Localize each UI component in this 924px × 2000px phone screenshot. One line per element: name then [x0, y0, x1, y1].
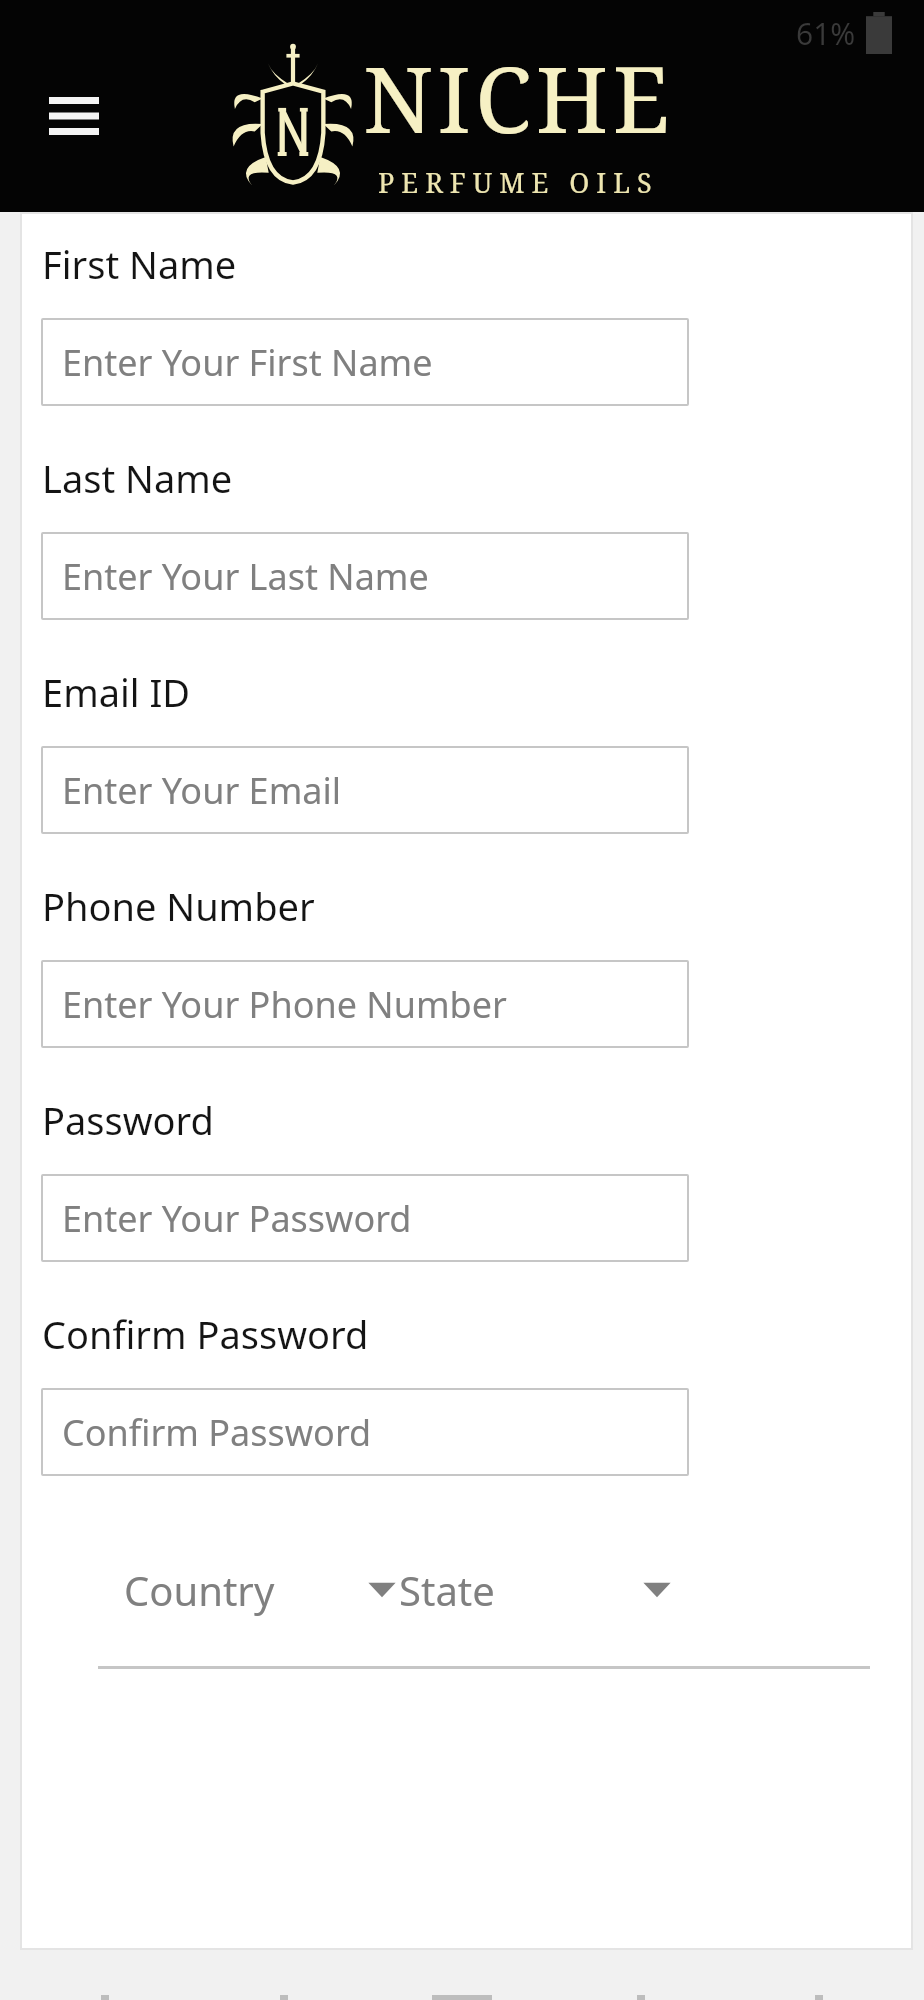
- button[interactable]: Open navigation menu: [48, 93, 100, 139]
- staticText: Enter Your Password: [62, 1194, 412, 1243]
- staticText: First Name: [42, 238, 237, 290]
- button[interactable]: Country: [124, 1550, 399, 1630]
- staticText: 61%: [796, 13, 856, 54]
- staticText: Country: [124, 1563, 275, 1617]
- button[interactable]: Confirm Password: [41, 1388, 689, 1476]
- staticText: State: [399, 1563, 495, 1617]
- staticText: Confirm Password: [42, 1308, 369, 1360]
- staticText: Confirm Password: [62, 1408, 372, 1457]
- button[interactable]: Enter Your Phone Number: [41, 960, 689, 1048]
- staticText: Phone Number: [42, 880, 315, 932]
- staticText: Password: [42, 1094, 214, 1146]
- staticText: NICHE: [363, 35, 674, 160]
- button[interactable]: Enter Your Last Name: [41, 532, 689, 620]
- button[interactable]: Enter Your Password: [41, 1174, 689, 1262]
- staticText: Enter Your Last Name: [62, 552, 429, 601]
- button[interactable]: Wishlist: [596, 1986, 686, 2000]
- button[interactable]: Cart: [417, 1986, 507, 2000]
- button[interactable]: Enter Your First Name: [41, 318, 689, 406]
- button[interactable]: State: [399, 1550, 674, 1630]
- staticText: Last Name: [42, 452, 233, 504]
- staticText: Email ID: [42, 666, 191, 718]
- staticText: PERFUME OILS: [378, 164, 659, 201]
- staticText: Enter Your Phone Number: [62, 980, 507, 1029]
- button[interactable]: Home: [60, 1986, 150, 2000]
- staticText: Enter Your First Name: [62, 338, 433, 387]
- staticText: Enter Your Email: [62, 766, 342, 815]
- button[interactable]: Account: [774, 1986, 864, 2000]
- button[interactable]: Shop: [239, 1986, 329, 2000]
- button[interactable]: Enter Your Email: [41, 746, 689, 834]
